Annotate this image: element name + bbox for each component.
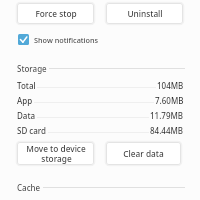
staticText: Uninstall (127, 8, 163, 19)
staticText: 104MB (157, 80, 184, 91)
button[interactable]: Total (0, 80, 200, 91)
button[interactable]: Data (0, 110, 200, 121)
staticText: Data (17, 110, 36, 121)
staticText: Move to device (26, 143, 86, 154)
staticText: 11.79MB (150, 110, 184, 121)
button[interactable]: Move to device (16, 141, 95, 166)
button[interactable]: Force stop (16, 2, 95, 25)
staticText: App (17, 95, 33, 106)
staticText: storage (41, 153, 72, 164)
button[interactable]: SD card (0, 125, 200, 136)
staticText: Cache (17, 182, 41, 193)
staticText: Total (17, 80, 36, 91)
staticText: Clear data (123, 148, 164, 159)
staticText: Storage (17, 63, 47, 74)
button[interactable]: App (0, 95, 200, 106)
staticText: SD card (17, 125, 47, 136)
staticText: 84.44MB (150, 125, 184, 136)
staticText: Force stop (35, 8, 77, 19)
staticText: Show notifications (34, 35, 99, 45)
button[interactable]: Uninstall (105, 2, 184, 25)
button[interactable]: Show notifications (18, 34, 99, 45)
button[interactable]: Clear data (105, 141, 182, 166)
staticText: 7.60MB (155, 95, 184, 106)
